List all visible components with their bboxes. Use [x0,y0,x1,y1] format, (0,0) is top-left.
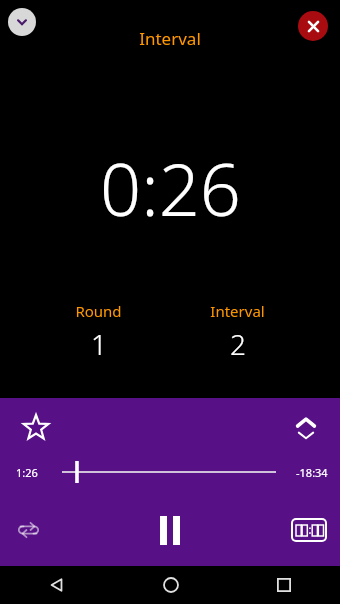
button[interactable]: Recents [227,566,340,604]
staticText: 2 [230,325,246,363]
staticText: -18:34 [296,465,328,480]
staticText: 1:26 [16,465,38,480]
button[interactable]: Back [0,566,114,604]
button[interactable] [62,459,276,485]
staticText: Round [75,301,122,321]
staticText: 0:26 [100,139,241,237]
staticText: 1 [91,325,107,363]
button[interactable]: Home [114,566,227,604]
button[interactable]: Sleep timer [288,513,330,547]
button[interactable]: Pause [144,504,196,556]
button[interactable]: Repeat [6,508,50,552]
button[interactable]: Close [298,11,328,41]
button[interactable]: Favorite [14,406,58,450]
button[interactable]: Expand [284,406,328,450]
staticText: Interval [139,27,201,50]
staticText: Interval [210,301,265,321]
button[interactable]: Collapse [8,8,36,36]
